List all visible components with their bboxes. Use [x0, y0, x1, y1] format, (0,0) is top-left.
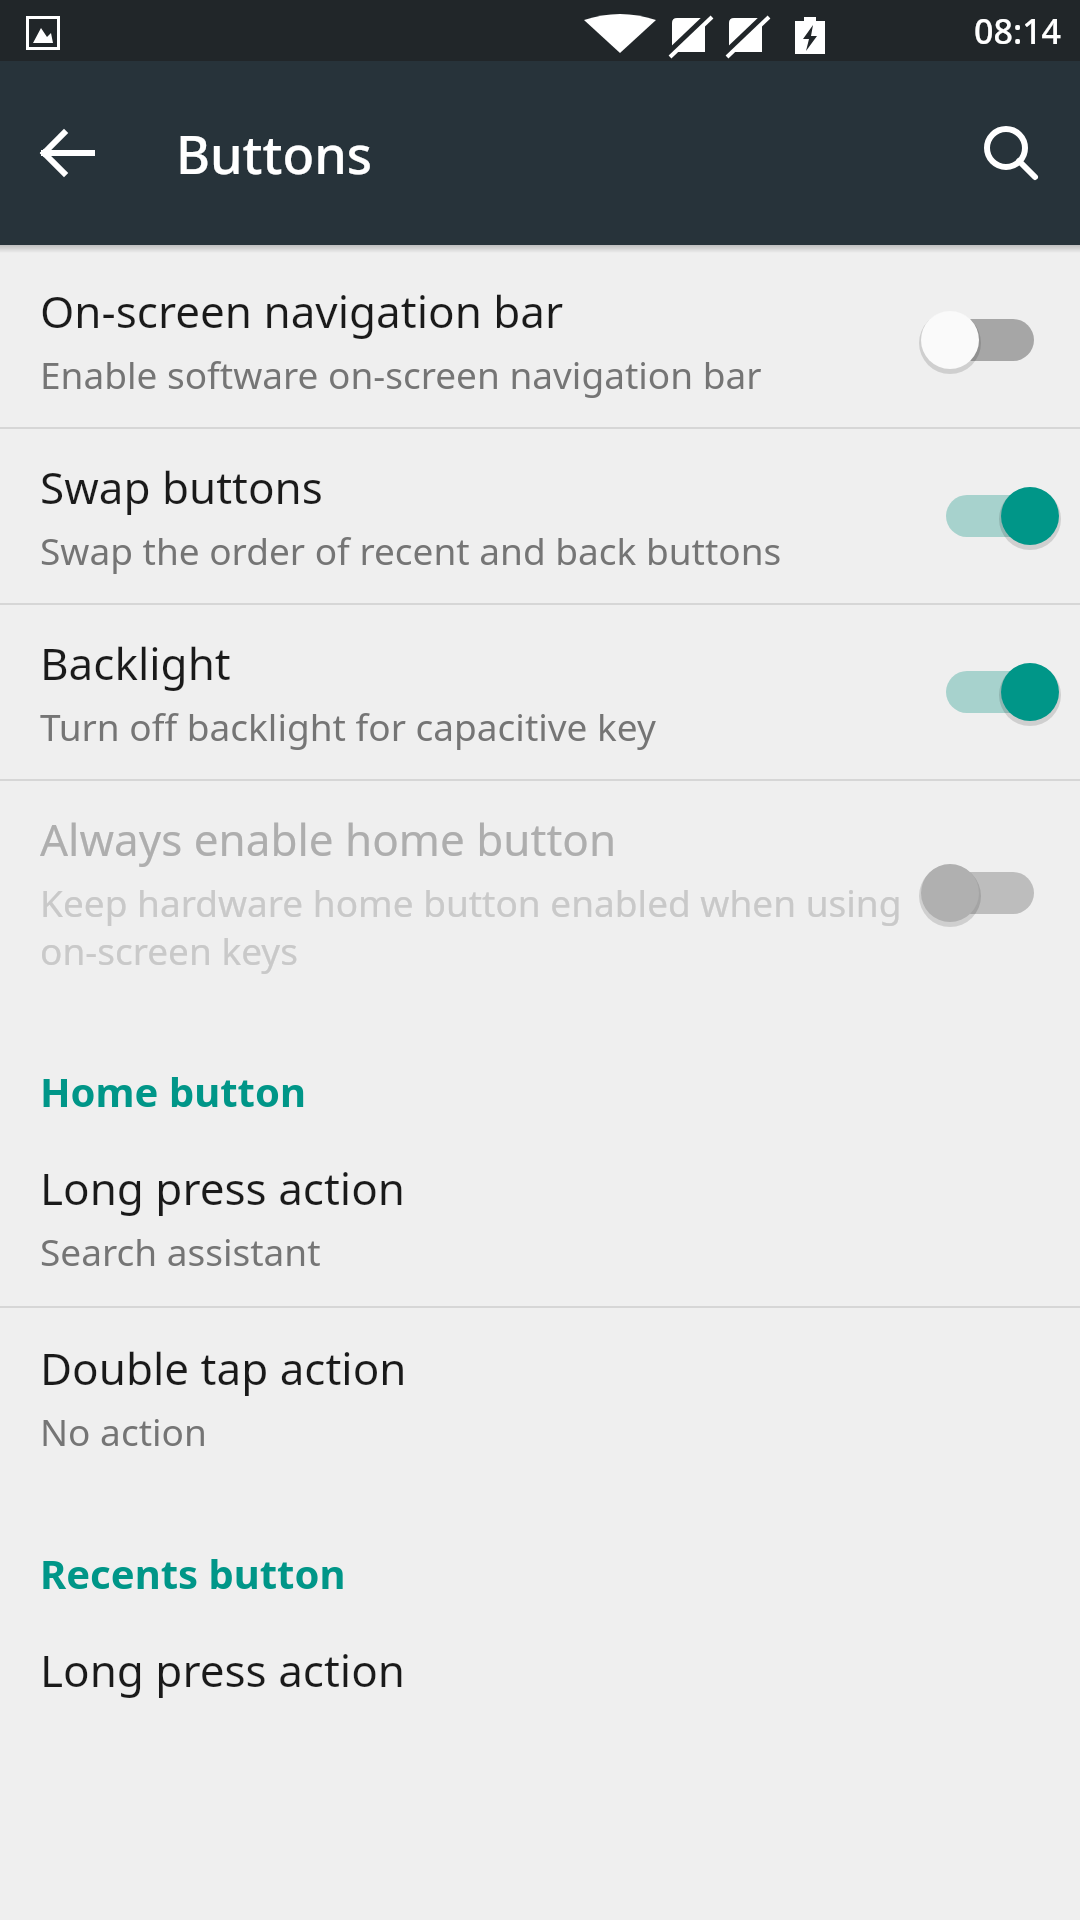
staticText: Always enable home button: [40, 809, 617, 869]
staticText: Swap the order of recent and back button…: [40, 525, 782, 575]
button[interactable]: Search: [962, 105, 1058, 201]
button[interactable]: On: [936, 480, 1044, 552]
staticText: Swap buttons: [40, 457, 323, 517]
staticText: Buttons: [176, 118, 373, 189]
button[interactable]: Backlight: [0, 605, 1080, 779]
staticText: Long press action: [40, 1158, 405, 1218]
button[interactable]: Long press action: [0, 1610, 1080, 1730]
button[interactable]: Long press action: [0, 1128, 1080, 1306]
staticText: 08:14: [974, 8, 1062, 54]
staticText: Backlight: [40, 633, 231, 693]
staticText: Keep hardware home button enabled when u…: [40, 877, 912, 976]
button[interactable]: Off: [936, 857, 1044, 929]
staticText: Search assistant: [40, 1226, 321, 1276]
staticText: Recents button: [40, 1546, 346, 1600]
staticText: Double tap action: [40, 1338, 407, 1398]
button[interactable]: Swap buttons: [0, 429, 1080, 603]
staticText: Enable software on-screen navigation bar: [40, 349, 762, 399]
staticText: Long press action: [40, 1640, 405, 1700]
button[interactable]: Double tap action: [0, 1308, 1080, 1486]
button[interactable]: Always enable home button: [0, 781, 1080, 1004]
button[interactable]: Off: [936, 304, 1044, 376]
staticText: No action: [40, 1406, 207, 1456]
staticText: On-screen navigation bar: [40, 281, 564, 341]
button[interactable]: On-screen navigation bar: [0, 253, 1080, 427]
staticText: Home button: [40, 1064, 306, 1118]
staticText: Turn off backlight for capacitive key: [40, 701, 656, 751]
button[interactable]: Back: [20, 105, 116, 201]
button[interactable]: On: [936, 656, 1044, 728]
